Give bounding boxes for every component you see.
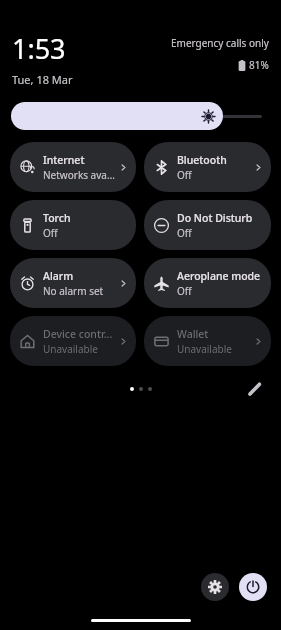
button[interactable]: Power	[239, 573, 267, 601]
staticText: Device contr...	[43, 327, 113, 341]
staticText: 1:53	[12, 30, 66, 67]
button[interactable]: Bluetooth	[144, 142, 271, 192]
staticText: Off	[43, 226, 58, 240]
staticText: Alarm	[43, 269, 74, 283]
button[interactable]: Settings	[201, 573, 229, 601]
staticText: Aeroplane mode	[177, 269, 261, 283]
staticText: No alarm set	[43, 284, 104, 298]
button[interactable]: Internet	[10, 142, 136, 192]
button[interactable]: Wallet	[144, 316, 271, 366]
staticText: Emergency calls only	[171, 36, 269, 50]
staticText: Internet	[43, 153, 85, 167]
staticText: Torch	[43, 211, 71, 225]
button[interactable]: Brightness	[11, 102, 270, 130]
button[interactable]: Torch	[10, 200, 136, 250]
staticText: Tue, 18 Mar	[12, 72, 73, 87]
staticText: Unavailable	[43, 342, 98, 356]
staticText: Bluetooth	[177, 153, 227, 167]
button[interactable]: Edit tiles	[245, 379, 265, 399]
button[interactable]: Device contr...	[10, 316, 136, 366]
button[interactable]: Do Not Disturb	[144, 200, 271, 250]
staticText: Do Not Disturb	[177, 211, 253, 225]
button[interactable]: Aeroplane mode	[144, 258, 271, 308]
staticText: Off	[177, 226, 192, 240]
staticText: Off	[177, 168, 192, 182]
staticText: Networks avai...	[43, 168, 117, 182]
staticText: Off	[177, 284, 192, 298]
staticText: Unavailable	[177, 342, 232, 356]
staticText: Wallet	[177, 327, 209, 341]
button[interactable]: Alarm	[10, 258, 136, 308]
staticText: 81%	[249, 58, 269, 72]
